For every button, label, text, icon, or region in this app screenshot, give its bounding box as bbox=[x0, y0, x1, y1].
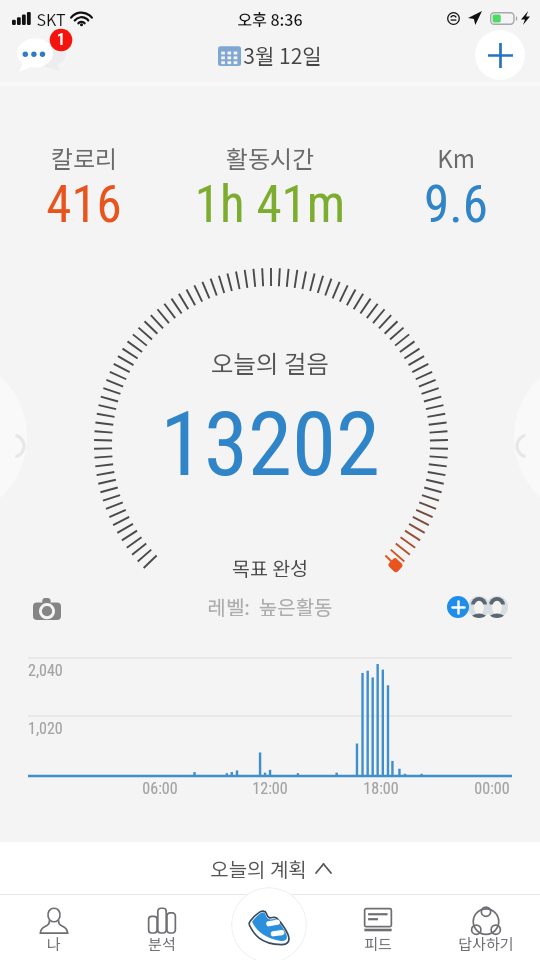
button[interactable]: Steps bbox=[231, 887, 307, 960]
staticText: 1,020 bbox=[28, 719, 63, 738]
button[interactable]: Add friend bbox=[447, 596, 469, 618]
button[interactable]: Messages bbox=[10, 26, 78, 78]
staticText: 06:00 bbox=[130, 779, 190, 798]
staticText: 13202 bbox=[0, 392, 540, 496]
staticText: 3월 12일 bbox=[243, 40, 322, 70]
button[interactable]: 분석 bbox=[114, 895, 210, 960]
staticText: 00:00 bbox=[462, 779, 522, 798]
staticText: 9.6 bbox=[361, 175, 540, 235]
staticText: 오늘의 계획 bbox=[210, 854, 307, 883]
staticText: 18:00 bbox=[351, 779, 411, 798]
button[interactable] bbox=[486, 596, 508, 618]
button[interactable]: 칼로리 bbox=[0, 140, 179, 235]
button[interactable] bbox=[468, 596, 490, 618]
staticText: 나 bbox=[6, 933, 102, 955]
button[interactable]: 활동시간 bbox=[175, 140, 365, 235]
button[interactable]: 오늘의 계획 bbox=[0, 842, 540, 894]
button[interactable]: 3월 12일 bbox=[214, 40, 322, 70]
staticText: 칼로리 bbox=[0, 140, 179, 175]
staticText: 분석 bbox=[114, 933, 210, 955]
staticText: Km bbox=[361, 140, 540, 175]
staticText: 오후 8:36 bbox=[237, 7, 303, 30]
staticText: 2,040 bbox=[28, 661, 63, 680]
staticText: 12:00 bbox=[240, 779, 300, 798]
button[interactable]: Camera bbox=[31, 594, 63, 623]
staticText: 416 bbox=[0, 175, 179, 235]
button[interactable]: 답사하기 bbox=[438, 895, 534, 960]
staticText: 1h 41m bbox=[175, 175, 365, 235]
staticText: 목표 완성 bbox=[0, 553, 540, 581]
button[interactable]: 피드 bbox=[330, 895, 426, 960]
button[interactable]: Add bbox=[475, 30, 525, 80]
staticText: 답사하기 bbox=[438, 933, 534, 955]
staticText: 오늘의 걸음 bbox=[0, 345, 540, 380]
staticText: 1 bbox=[53, 30, 69, 49]
staticText: 피드 bbox=[330, 933, 426, 955]
staticText: 활동시간 bbox=[175, 140, 365, 175]
staticText: 레벨: 높은활동 bbox=[0, 592, 540, 621]
button[interactable]: Km bbox=[361, 140, 540, 235]
button[interactable]: 나 bbox=[6, 895, 102, 960]
staticText: SKT bbox=[36, 7, 66, 30]
